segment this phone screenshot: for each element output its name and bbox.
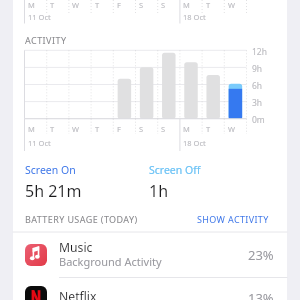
staticText: 1h — [149, 180, 169, 202]
button[interactable]: Music app — [25, 244, 47, 266]
staticText: 11 Oct — [28, 12, 51, 22]
staticText: 18 Oct — [183, 138, 206, 148]
button[interactable]: Netflix app — [25, 286, 47, 300]
staticText: Netflix — [59, 288, 97, 300]
button[interactable]: SHOW ACTIVITY — [196, 210, 270, 228]
staticText: F — [117, 124, 121, 134]
staticText: Music — [59, 239, 93, 256]
staticText: SHOW ACTIVITY — [197, 213, 269, 225]
staticText: W — [72, 0, 79, 10]
staticText: T — [50, 0, 55, 10]
staticText: M — [183, 0, 190, 10]
button[interactable]: Screen On — [25, 163, 82, 202]
staticText: S — [139, 0, 144, 10]
staticText: 12h — [252, 46, 267, 58]
staticText: 13% — [248, 289, 274, 300]
staticText: 9h — [252, 63, 263, 75]
staticText: S — [161, 0, 166, 10]
staticText: Screen Off — [149, 163, 201, 177]
staticText: M — [183, 124, 190, 134]
staticText: T — [206, 0, 211, 10]
staticText: T — [95, 0, 100, 10]
button[interactable]: Screen Off — [149, 163, 201, 202]
staticText: ACTIVITY — [25, 34, 67, 46]
staticText: 18 Oct — [183, 12, 206, 22]
staticText: W — [228, 0, 235, 10]
staticText: M — [28, 124, 35, 134]
staticText: 6h — [252, 80, 263, 92]
staticText: S — [161, 124, 166, 134]
staticText: S — [139, 124, 144, 134]
staticText: T — [206, 124, 211, 134]
staticText: T — [50, 124, 55, 134]
staticText: F — [117, 0, 121, 10]
staticText: 23% — [248, 246, 274, 264]
staticText: 11 Oct — [28, 138, 51, 148]
staticText: W — [228, 124, 235, 134]
staticText: Screen On — [25, 163, 76, 177]
staticText: M — [28, 0, 35, 10]
staticText: T — [95, 124, 100, 134]
staticText: 0m — [252, 114, 265, 126]
staticText: 3h — [252, 97, 263, 109]
staticText: W — [72, 124, 79, 134]
staticText: Background Activity — [59, 254, 162, 269]
staticText: BATTERY USAGE (TODAY) — [25, 213, 138, 225]
staticText: 5h 21m — [25, 180, 82, 202]
